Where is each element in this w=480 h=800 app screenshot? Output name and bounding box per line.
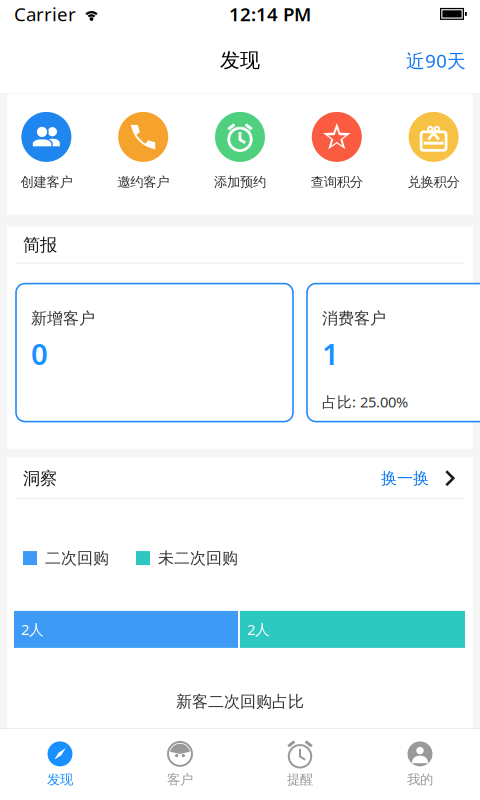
button[interactable]: 我的 <box>360 733 480 796</box>
button[interactable]: 客户 <box>120 733 240 796</box>
staticText: Carrier <box>14 1 76 26</box>
staticText: 12:14 PM <box>229 1 311 26</box>
staticText: 1 <box>322 334 339 373</box>
staticText: 我的 <box>407 771 433 788</box>
button[interactable]: 消费客户 <box>307 284 480 422</box>
staticText: 添加预约 <box>214 174 266 190</box>
button[interactable]: 提醒 <box>240 733 360 796</box>
button[interactable]: 新增客户 <box>16 284 293 422</box>
staticText: 查询积分 <box>311 174 363 190</box>
staticText: 未二次回购 <box>158 548 238 568</box>
button[interactable]: 换一换 <box>381 465 455 492</box>
staticText: 0 <box>31 334 48 373</box>
staticText: 新增客户 <box>31 309 95 328</box>
staticText: 占比: 25.00% <box>322 392 408 412</box>
staticText: 换一换 <box>381 469 429 488</box>
staticText: 洞察 <box>23 468 57 489</box>
button[interactable]: 发现 <box>0 733 120 796</box>
staticText: 近90天 <box>406 48 466 73</box>
staticText: 发现 <box>220 48 260 73</box>
button[interactable]: 邀约客户 <box>95 112 192 190</box>
staticText: 消费客户 <box>322 309 386 328</box>
staticText: 兑换积分 <box>408 174 460 190</box>
staticText: 二次回购 <box>45 548 109 568</box>
staticText: 2人 <box>247 620 270 639</box>
staticText: 邀约客户 <box>117 174 169 190</box>
button[interactable]: 兑换积分 <box>385 112 480 190</box>
button[interactable]: 近90天 <box>396 38 476 83</box>
staticText: 发现 <box>47 771 73 788</box>
button[interactable]: 添加预约 <box>192 112 288 190</box>
button[interactable]: 查询积分 <box>288 112 385 190</box>
staticText: 简报 <box>23 234 57 256</box>
button[interactable]: 创建客户 <box>0 112 95 190</box>
staticText: 创建客户 <box>20 174 72 190</box>
staticText: 客户 <box>167 771 193 788</box>
staticText: 2人 <box>21 620 44 639</box>
staticText: 新客二次回购占比 <box>176 692 304 712</box>
staticText: 提醒 <box>287 771 313 788</box>
